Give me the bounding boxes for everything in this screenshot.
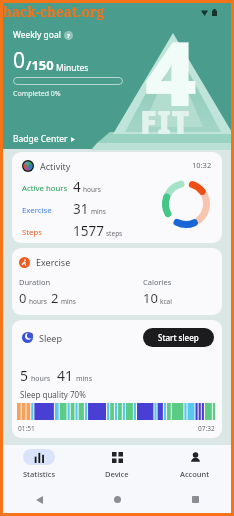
staticText: hours xyxy=(31,374,51,384)
staticText: Activity xyxy=(40,160,71,172)
staticText: hours xyxy=(29,297,47,306)
staticText: Exercise xyxy=(36,256,71,268)
staticText: 0 xyxy=(13,46,26,75)
staticText: Active hours xyxy=(22,183,68,194)
staticText: 5 xyxy=(20,366,29,385)
button[interactable]: Home xyxy=(78,489,156,510)
staticText: mins xyxy=(76,374,93,384)
staticText: 4 xyxy=(73,178,81,196)
staticText: Exercise xyxy=(22,205,52,216)
button[interactable]: Exercise xyxy=(12,248,222,315)
staticText: Completed 0% xyxy=(13,89,61,99)
staticText: Weekly goal xyxy=(13,29,61,41)
staticText: ? xyxy=(67,32,70,40)
button[interactable]: Badge Center xyxy=(13,133,75,145)
staticText: FIT xyxy=(140,101,191,143)
staticText: Badge Center xyxy=(13,133,68,145)
staticText: Start sleep xyxy=(158,332,199,343)
staticText: Sleep quality 70% xyxy=(20,389,86,400)
button[interactable]: Device xyxy=(78,446,156,488)
staticText: steps xyxy=(106,229,123,238)
staticText: 01:51 xyxy=(18,424,35,433)
staticText: 2 xyxy=(51,289,59,307)
staticText: 41 xyxy=(57,366,74,385)
button[interactable]: Start sleep xyxy=(143,328,214,347)
staticText: Calories xyxy=(143,277,172,287)
staticText: Account xyxy=(180,469,210,479)
staticText: Duration xyxy=(19,277,51,287)
staticText: mins xyxy=(61,297,76,306)
staticText: 4 xyxy=(145,12,197,132)
button[interactable]: Activity xyxy=(12,152,222,243)
button[interactable]: Account xyxy=(156,446,234,488)
button[interactable]: Sleep xyxy=(12,320,222,438)
staticText: Sleep xyxy=(39,332,62,344)
staticText: kcal xyxy=(160,297,172,306)
staticText: 1577 xyxy=(73,222,104,240)
staticText: Minutes xyxy=(56,62,89,74)
staticText: 31 xyxy=(73,200,89,218)
staticText: hours xyxy=(83,185,101,194)
staticText: hack-cheat.org xyxy=(3,3,105,21)
staticText: 10:32 xyxy=(192,160,212,170)
staticText: Steps xyxy=(22,227,43,238)
button[interactable]: Recents xyxy=(156,489,234,510)
staticText: mins xyxy=(91,207,106,216)
staticText: 07:32 xyxy=(198,424,215,433)
button[interactable]: Statistics xyxy=(0,446,78,488)
staticText: Device xyxy=(105,469,129,479)
button[interactable]: Back xyxy=(0,489,78,510)
staticText: Statistics xyxy=(23,469,56,479)
staticText: /150 xyxy=(26,56,54,74)
button[interactable]: Help xyxy=(64,31,73,40)
staticText: 0 xyxy=(19,289,27,307)
staticText: 10 xyxy=(143,289,158,307)
